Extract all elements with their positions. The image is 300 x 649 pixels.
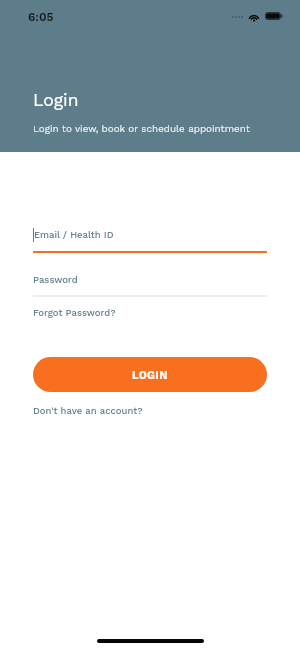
- button[interactable]: Email / Health ID: [33, 229, 114, 243]
- staticText: Email / Health ID: [34, 229, 114, 240]
- button[interactable]: LOGIN: [33, 357, 267, 392]
- button[interactable]: Password: [33, 274, 78, 285]
- staticText: Login: [33, 90, 79, 111]
- staticText: 6:05: [28, 10, 54, 24]
- staticText: Login to view, book or schedule appointm…: [33, 123, 250, 135]
- button[interactable]: Don't have an account?: [33, 405, 143, 416]
- button[interactable]: Forgot Password?: [33, 307, 116, 318]
- staticText: LOGIN: [132, 369, 168, 382]
